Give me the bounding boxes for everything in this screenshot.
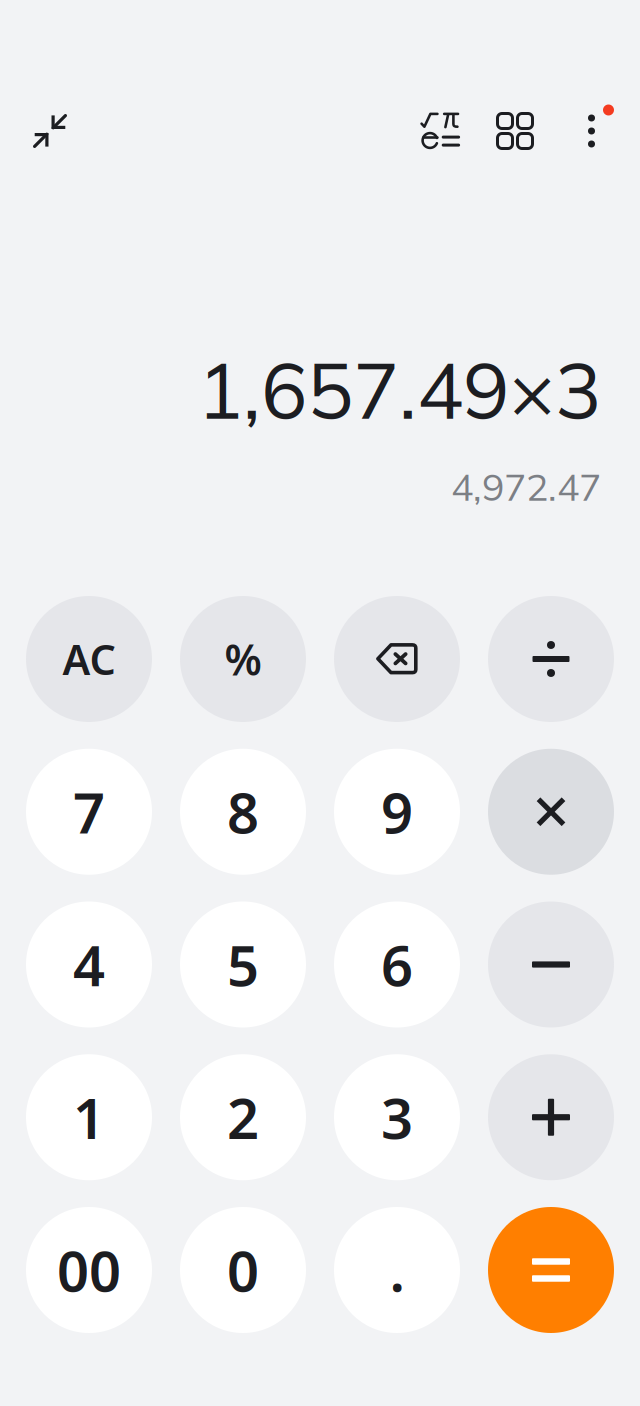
button[interactable]: 4 (26, 901, 152, 1027)
staticText: 1 (73, 1080, 105, 1154)
staticText: AC (62, 632, 115, 686)
button[interactable]: Scientific functions (411, 102, 469, 160)
staticText: 00 (57, 1233, 121, 1307)
staticText: 4,972.47 (451, 463, 601, 510)
staticText: 0 (227, 1233, 259, 1307)
button[interactable]: Subtract (488, 901, 614, 1027)
button[interactable]: Divide (488, 596, 614, 722)
staticText: 8 (227, 775, 259, 849)
staticText: . (389, 1233, 404, 1307)
button[interactable]: 9 (334, 749, 460, 875)
staticText: 2 (227, 1080, 259, 1154)
button[interactable]: Collapse (21, 102, 79, 160)
button[interactable]: 00 (26, 1207, 152, 1333)
staticText: 7 (73, 775, 105, 849)
button[interactable]: Multiply (488, 749, 614, 875)
button[interactable]: . (334, 1207, 460, 1333)
button[interactable]: 1 (26, 1054, 152, 1180)
staticText: 9 (381, 775, 413, 849)
button[interactable]: 5 (180, 901, 306, 1027)
staticText: 6 (381, 927, 413, 1002)
button[interactable]: 8 (180, 749, 306, 875)
staticText: 3 (381, 1080, 413, 1154)
button[interactable]: 0 (180, 1207, 306, 1333)
button[interactable]: Backspace (334, 596, 460, 722)
staticText: % (224, 631, 261, 687)
button[interactable]: 7 (26, 749, 152, 875)
button[interactable]: AC (26, 596, 152, 722)
button[interactable]: Add (488, 1054, 614, 1180)
staticText: 5 (227, 927, 259, 1002)
button[interactable]: More options (573, 97, 625, 155)
button[interactable]: Unit converters (486, 102, 544, 160)
button[interactable]: 6 (334, 901, 460, 1027)
button[interactable]: % (180, 596, 306, 722)
button[interactable]: 2 (180, 1054, 306, 1180)
staticText: 4 (73, 927, 105, 1002)
button[interactable]: Equals (488, 1207, 614, 1333)
button[interactable]: 3 (334, 1054, 460, 1180)
staticText: 1,657.49×3 (197, 341, 601, 438)
